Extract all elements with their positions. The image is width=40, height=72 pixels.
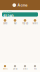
- button[interactable]: More: [30, 19, 40, 25]
- staticText: You: [33, 68, 36, 70]
- button[interactable]: Home: [0, 65, 10, 70]
- staticText: Top up: [22, 22, 28, 25]
- staticText: More: [32, 22, 37, 25]
- staticText: Acme: [17, 3, 27, 7]
- button[interactable]: Send: [0, 19, 10, 25]
- button[interactable]: Balance: [2, 12, 38, 17]
- staticText: Stats: [22, 68, 27, 70]
- button[interactable]: Pay: [10, 19, 20, 25]
- staticText: $1,240: [3, 14, 13, 18]
- staticText: Pay: [13, 22, 16, 25]
- button[interactable]: Top up: [20, 19, 30, 25]
- staticText: Send: [3, 22, 7, 25]
- button[interactable]: Stats: [20, 65, 30, 70]
- staticText: Cards: [12, 68, 17, 70]
- button[interactable]: You: [30, 65, 40, 70]
- button[interactable]: Cards: [10, 65, 20, 70]
- staticText: Balance: [3, 11, 11, 13]
- staticText: Home: [2, 68, 7, 70]
